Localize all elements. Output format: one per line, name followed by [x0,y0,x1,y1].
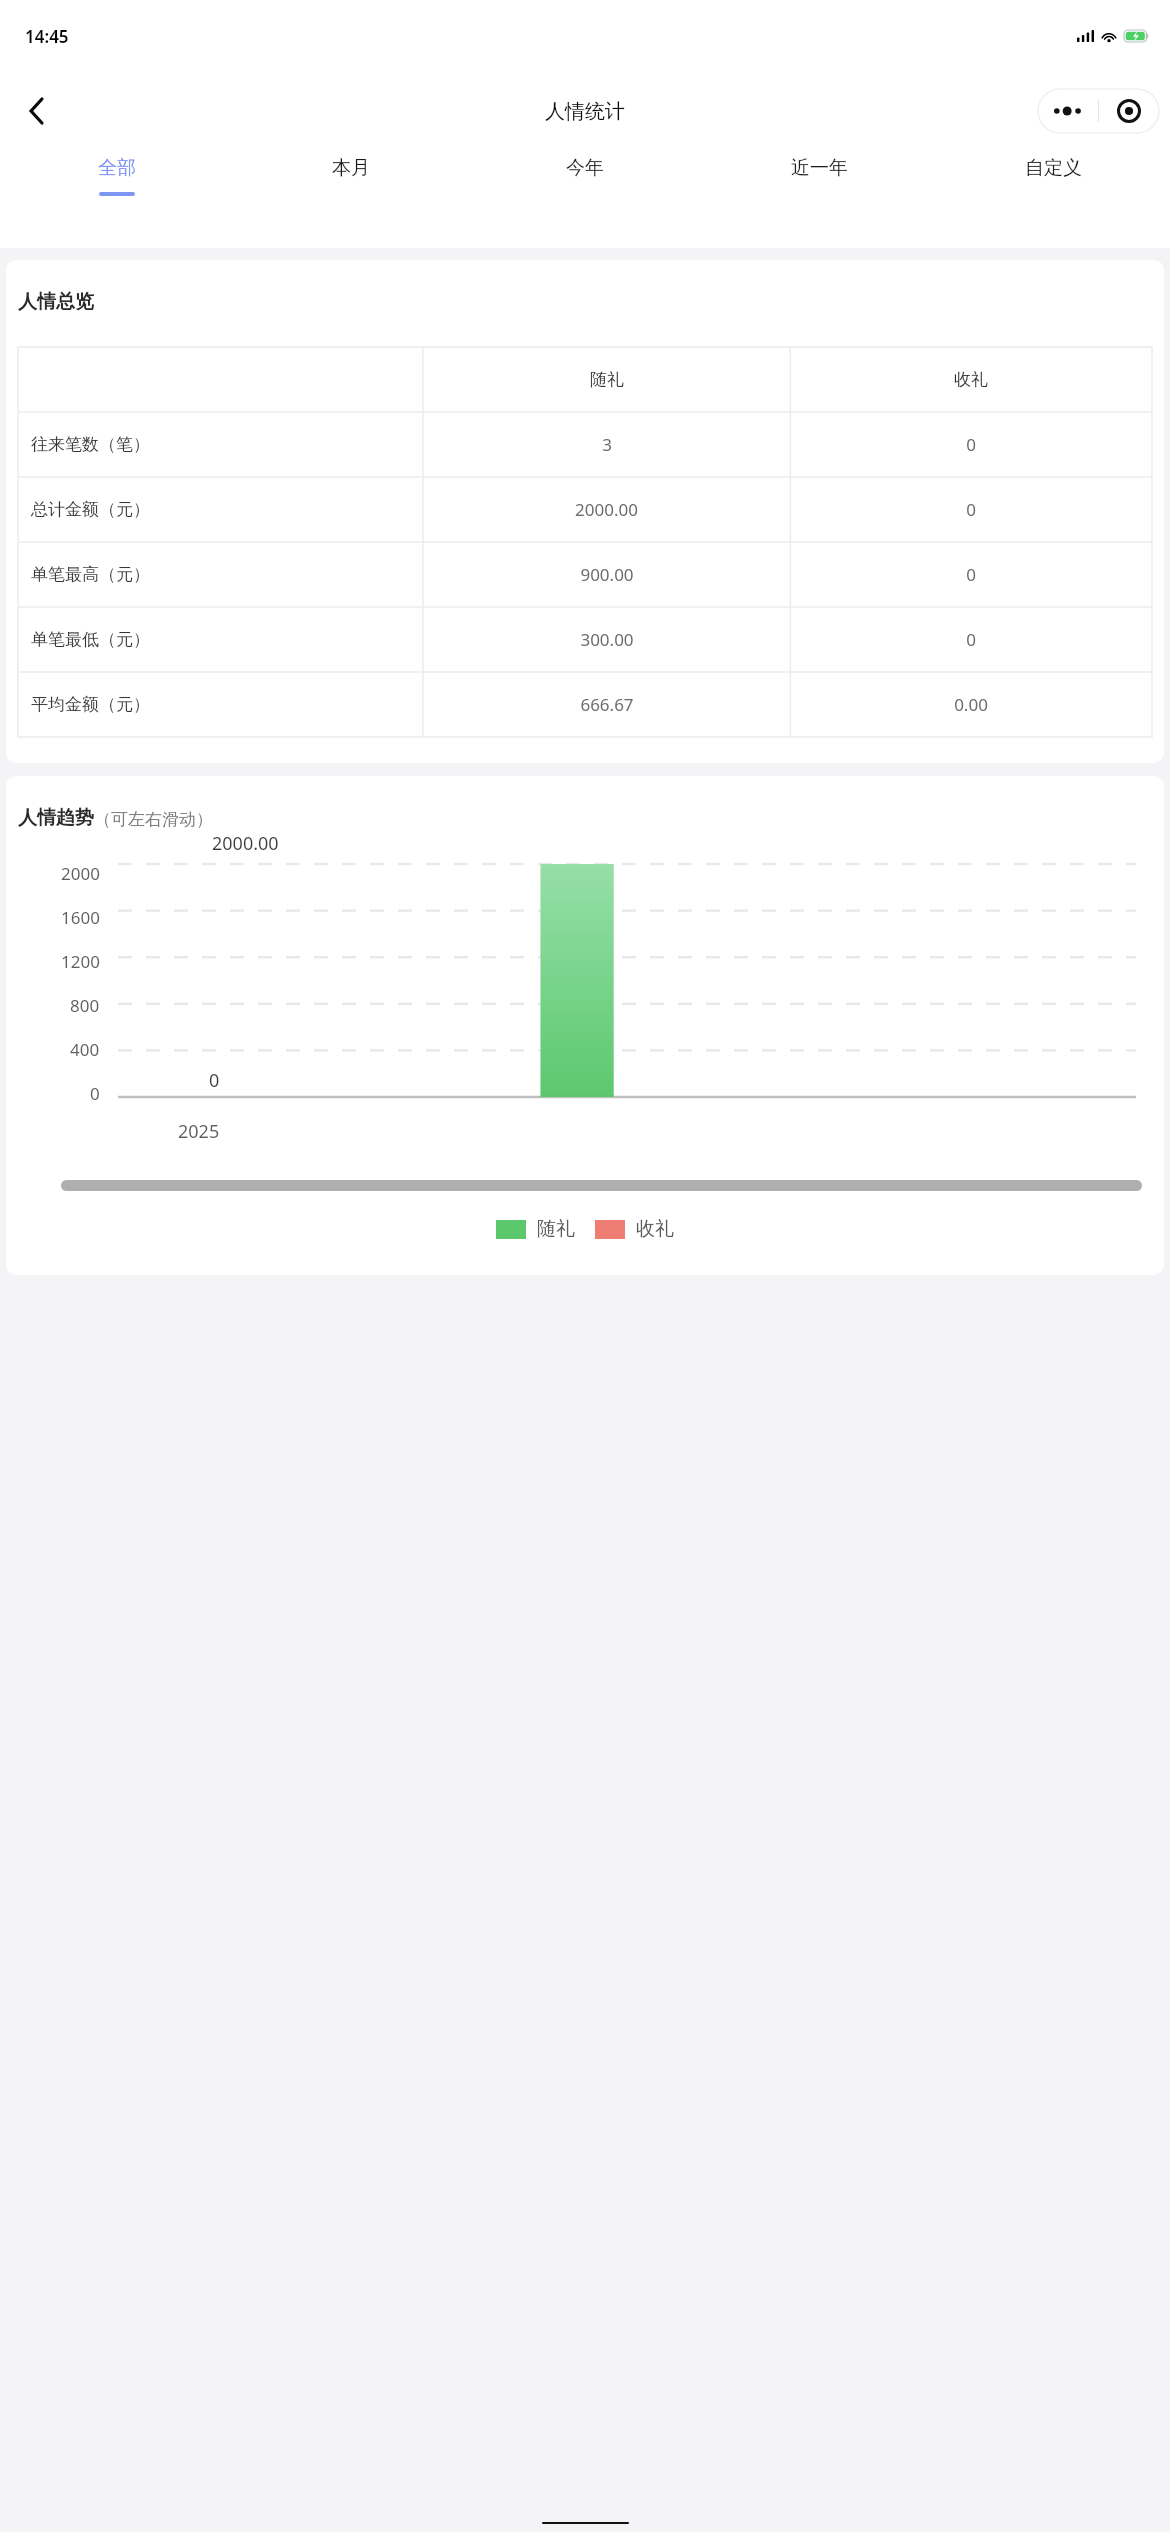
staticText: 收礼 [954,369,988,390]
staticText: 0 [966,628,976,651]
staticText: 平均金额（元） [31,694,150,715]
staticText: 800 [70,994,100,1017]
staticText: 随礼 [537,1217,575,1241]
staticText: 自定义 [1025,156,1082,180]
staticText: 2000 [61,862,100,885]
button[interactable]: 近一年 [702,156,936,222]
staticText: 0 [209,1068,220,1093]
staticText: 全部 [98,156,136,180]
staticText: 今年 [566,156,604,180]
staticText: 收礼 [636,1217,674,1241]
staticText: 人情总览 [18,290,94,314]
staticText: 400 [70,1038,100,1061]
staticText: 2025 [178,1119,220,1144]
staticText: 2000.00 [212,831,279,856]
button[interactable]: 全部 [0,156,234,222]
staticText: 3 [602,433,612,456]
staticText: 往来笔数（笔） [31,434,150,455]
staticText: 单笔最低（元） [31,629,150,650]
staticText: 本月 [332,156,370,180]
staticText: 0 [966,563,976,586]
staticText: 900.00 [580,563,634,586]
button[interactable]: 今年 [468,156,702,222]
staticText: 近一年 [791,156,848,180]
staticText: 1200 [61,950,100,973]
button[interactable]: More [1038,89,1098,133]
staticText: 0 [966,433,976,456]
button[interactable]: 本月 [234,156,468,222]
staticText: 0 [90,1082,100,1105]
staticText: 666.67 [580,693,634,716]
staticText: （可左右滑动） [94,809,213,830]
staticText: 0.00 [954,693,988,716]
button[interactable]: Close [1099,89,1159,133]
staticText: 单笔最高（元） [31,564,150,585]
staticText: 300.00 [580,628,634,651]
staticText: 1600 [61,906,100,929]
button[interactable]: 自定义 [936,156,1170,222]
staticText: 总计金额（元） [31,499,150,520]
button[interactable]: Back [8,83,64,139]
staticText: 14:45 [25,25,69,48]
staticText: 0 [966,498,976,521]
staticText: 人情统计 [545,99,625,124]
staticText: 2000.00 [575,498,638,521]
staticText: 随礼 [590,369,624,390]
staticText: 人情趋势 [18,806,94,830]
